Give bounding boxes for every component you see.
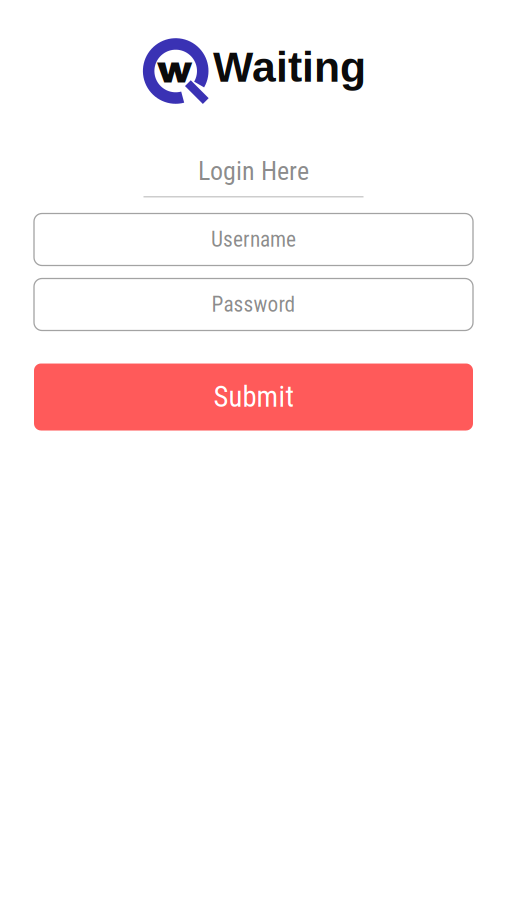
staticText: Login Here	[198, 156, 309, 186]
staticText: Password	[211, 292, 295, 317]
staticText: Waiting	[213, 43, 366, 91]
staticText: Submit	[213, 380, 293, 414]
button[interactable]: Submit	[34, 363, 473, 430]
staticText: w	[157, 50, 192, 90]
button[interactable]: Username	[34, 213, 473, 265]
button[interactable]: Password	[34, 278, 473, 330]
staticText: Username	[211, 227, 296, 252]
